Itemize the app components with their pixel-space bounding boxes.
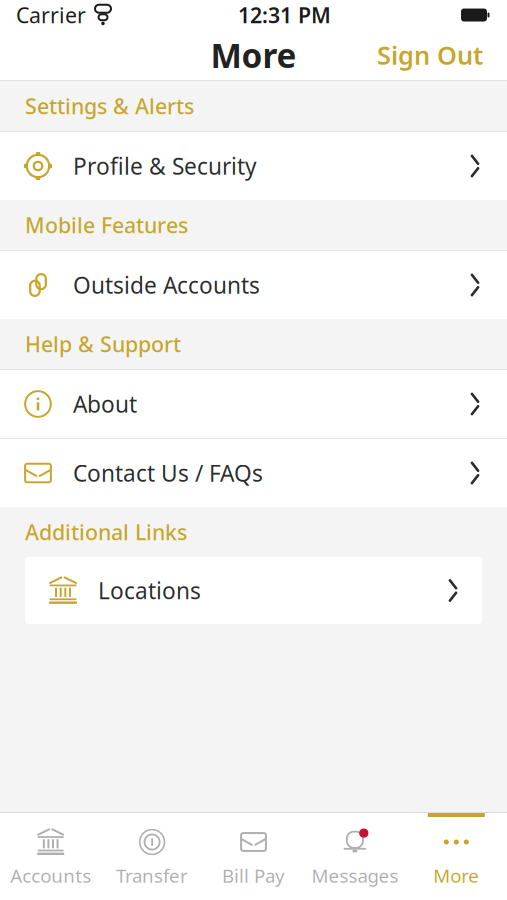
button[interactable]: Bill Pay <box>203 813 304 900</box>
staticText: 12:31 PM <box>238 1 331 29</box>
staticText: Settings & Alerts <box>25 92 194 120</box>
staticText: Sign Out <box>377 38 483 72</box>
staticText: Messages <box>311 863 398 888</box>
staticText: Locations <box>98 575 201 605</box>
button[interactable]: Accounts <box>0 813 101 900</box>
staticText: Transfer <box>116 863 188 888</box>
staticText: Profile & Security <box>73 151 257 181</box>
button[interactable]: Outside Accounts <box>0 251 507 319</box>
staticText: Accounts <box>10 863 91 888</box>
staticText: Contact Us / FAQs <box>73 458 263 488</box>
staticText: Help & Support <box>25 330 181 358</box>
button[interactable]: More <box>406 813 507 900</box>
button[interactable]: Messages <box>304 813 406 900</box>
button[interactable]: About <box>0 370 507 438</box>
button[interactable]: Transfer <box>101 813 203 900</box>
staticText: More <box>433 863 479 888</box>
button[interactable]: Profile & Security <box>0 132 507 200</box>
staticText: Mobile Features <box>25 211 188 239</box>
staticText: About <box>73 389 137 419</box>
staticText: More <box>210 33 296 77</box>
staticText: Carrier <box>16 1 86 29</box>
staticText: Outside Accounts <box>73 270 260 300</box>
button[interactable]: Contact Us / FAQs <box>0 439 507 507</box>
button[interactable]: Sign Out <box>363 30 497 80</box>
staticText: Bill Pay <box>222 863 285 888</box>
staticText: Additional Links <box>25 518 187 546</box>
button[interactable]: Locations <box>25 557 482 624</box>
